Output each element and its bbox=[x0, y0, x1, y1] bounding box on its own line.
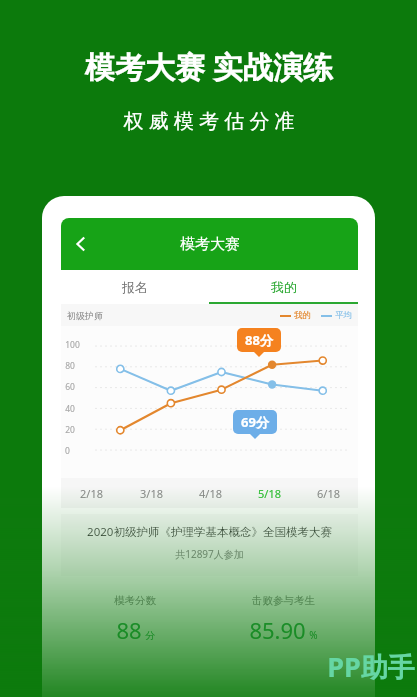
staticText: 6/18 bbox=[317, 486, 340, 501]
staticText: 88分 bbox=[245, 331, 273, 349]
staticText: 40 bbox=[65, 403, 75, 415]
staticText: 2020初级护师《护理学基本概念》全国模考大赛 bbox=[87, 524, 332, 540]
staticText: 20 bbox=[65, 424, 75, 436]
staticText: 88 bbox=[116, 615, 142, 645]
staticText: 模考分数 bbox=[114, 594, 156, 607]
staticText: 击败参与考生 bbox=[252, 594, 315, 607]
staticText: 2/18 bbox=[80, 486, 103, 501]
staticText: 4/18 bbox=[199, 486, 222, 501]
staticText: 3/18 bbox=[140, 486, 163, 501]
button[interactable]: 3/18 bbox=[121, 478, 181, 508]
staticText: 0 bbox=[65, 445, 70, 457]
staticText: 5/18 bbox=[258, 486, 281, 501]
staticText: 共12897人参加 bbox=[175, 547, 244, 561]
staticText: 平均 bbox=[335, 310, 352, 321]
staticText: 我的 bbox=[294, 310, 311, 321]
staticText: 85.90 bbox=[249, 615, 306, 645]
button[interactable]: 4/18 bbox=[181, 478, 240, 508]
staticText: 模考大赛 实战演练 bbox=[85, 46, 333, 87]
button[interactable]: 2/18 bbox=[61, 478, 121, 508]
staticText: 报名 bbox=[122, 279, 148, 295]
staticText: 60 bbox=[65, 381, 75, 393]
staticText: 权 威 模 考 估 分 准 bbox=[123, 107, 295, 134]
staticText: 分 bbox=[145, 629, 155, 642]
button[interactable]: 我的 bbox=[209, 270, 358, 304]
staticText: 69分 bbox=[241, 413, 269, 431]
staticText: % bbox=[309, 628, 318, 642]
button[interactable]: 5/18 bbox=[240, 478, 299, 508]
staticText: 初级护师 bbox=[67, 310, 103, 321]
staticText: 100 bbox=[65, 339, 80, 351]
button[interactable]: 报名 bbox=[61, 270, 209, 304]
button[interactable]: Back bbox=[61, 224, 101, 264]
button[interactable]: 6/18 bbox=[299, 478, 358, 508]
staticText: PP助手 bbox=[327, 648, 415, 685]
staticText: 80 bbox=[65, 360, 75, 372]
staticText: 我的 bbox=[271, 279, 297, 295]
staticText: 模考大赛 bbox=[180, 235, 240, 254]
